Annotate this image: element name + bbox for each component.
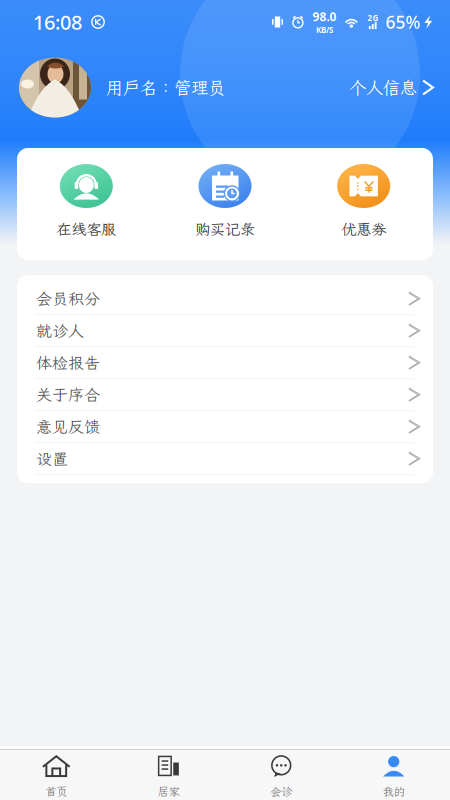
staticText: 首页 <box>45 784 67 799</box>
button[interactable]: 意见反馈 <box>17 411 433 443</box>
button[interactable]: 会员积分 <box>17 283 433 315</box>
staticText: 在线客服 <box>56 219 116 239</box>
staticText: 设置 <box>36 448 68 469</box>
button[interactable]: 在线客服 <box>17 164 156 239</box>
staticText: KB/S <box>316 25 333 35</box>
staticText: 会诊 <box>270 784 292 799</box>
staticText: 会员积分 <box>36 288 100 309</box>
button[interactable]: 首页 <box>0 744 112 800</box>
button[interactable]: 优惠券 <box>294 164 433 239</box>
button[interactable]: 就诊人 <box>17 315 433 347</box>
button[interactable]: 我的 <box>337 744 450 800</box>
button[interactable]: 体检报告 <box>17 347 433 379</box>
staticText: 98.0 <box>312 9 336 25</box>
button[interactable]: 购买记录 <box>156 164 294 239</box>
staticText: 我的 <box>383 784 405 799</box>
staticText: 体检报告 <box>36 352 100 373</box>
button[interactable]: 用户名：管理员 <box>0 44 450 131</box>
staticText: 就诊人 <box>36 320 84 341</box>
staticText: 用户名：管理员 <box>106 76 225 99</box>
staticText: 优惠券 <box>341 219 386 239</box>
button[interactable]: 设置 <box>17 443 433 475</box>
staticText: 2G <box>367 13 378 23</box>
staticText: 意见反馈 <box>36 416 100 437</box>
staticText: 16:08 <box>33 9 82 35</box>
button[interactable]: 关于序合 <box>17 379 433 411</box>
staticText: 购买记录 <box>195 219 255 239</box>
staticText: 居家 <box>158 784 180 799</box>
button[interactable]: 居家 <box>112 744 225 800</box>
staticText: 65% <box>385 10 420 33</box>
button[interactable]: 会诊 <box>225 744 337 800</box>
staticText: 个人信息 <box>349 76 417 99</box>
staticText: 关于序合 <box>36 384 100 405</box>
